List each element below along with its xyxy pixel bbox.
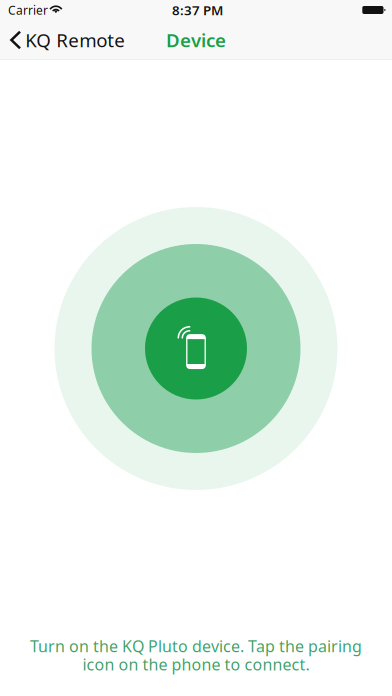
staticText: icon on the phone to connect. — [82, 654, 309, 675]
staticText: Carrier — [8, 2, 48, 18]
button[interactable]: KQ Remote — [0, 20, 133, 60]
staticText: Device — [166, 28, 226, 52]
staticText: 8:37 PM — [172, 1, 223, 19]
staticText: Turn on the KQ Pluto device. Tap the pai… — [30, 635, 362, 657]
staticText: KQ Remote — [25, 28, 125, 52]
